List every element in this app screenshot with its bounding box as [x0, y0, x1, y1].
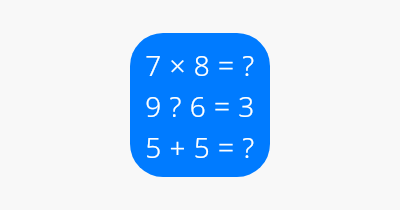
staticText: 7 × 8 = ? [145, 46, 255, 84]
staticText: 5 + 5 = ? [145, 128, 255, 166]
button[interactable]: Math quiz app icon [130, 33, 270, 177]
staticText: 9 ? 6 = 3 [145, 87, 255, 125]
